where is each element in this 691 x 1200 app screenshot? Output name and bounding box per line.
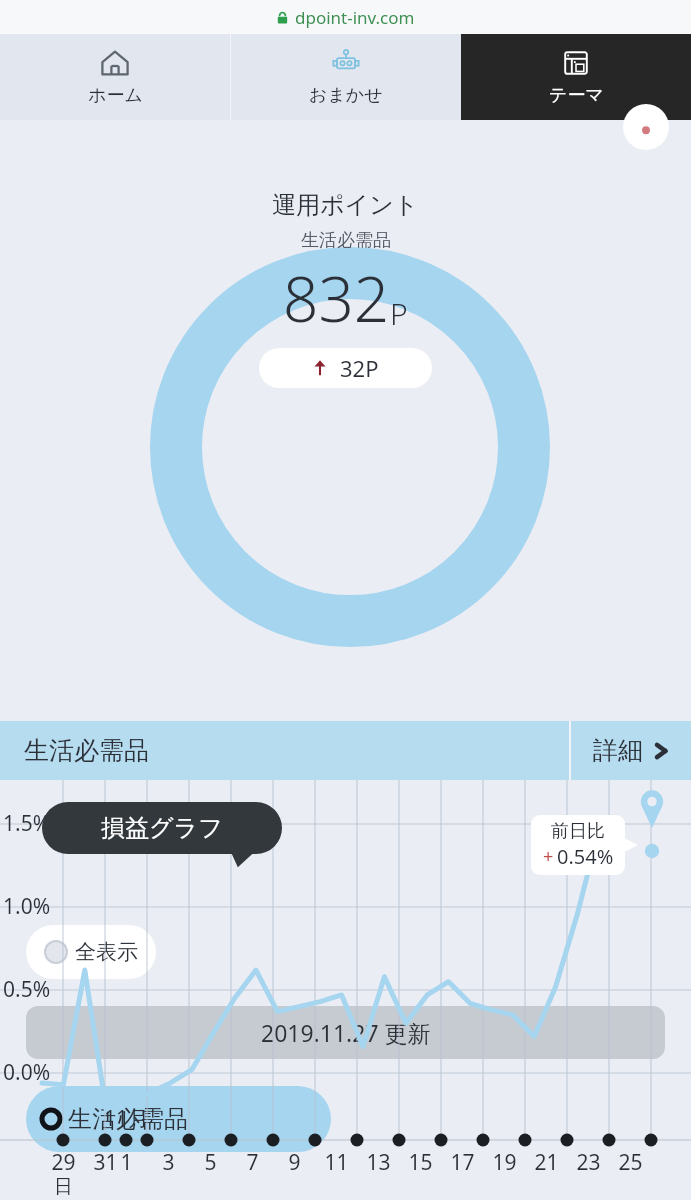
button[interactable]: 全表示: [44, 925, 138, 979]
button[interactable]: 損益グラフ: [42, 802, 282, 854]
staticText: 全表示: [75, 939, 138, 965]
staticText: 25: [618, 1148, 643, 1177]
staticText: 29: [51, 1148, 76, 1177]
button[interactable]: ホーム: [0, 34, 230, 120]
staticText: P: [390, 293, 408, 334]
staticText: 運用ポイント: [272, 190, 419, 220]
staticText: 0.0%: [3, 1058, 51, 1087]
staticText: 32P: [340, 353, 379, 383]
staticText: 前日比: [551, 820, 605, 843]
staticText: おまかせ: [309, 84, 383, 107]
staticText: ホーム: [88, 84, 143, 107]
staticText: 7: [246, 1148, 259, 1177]
staticText: 19: [492, 1148, 517, 1177]
staticText: 832: [283, 256, 390, 340]
button[interactable]: おまかせ: [231, 34, 461, 120]
staticText: 13: [366, 1148, 391, 1177]
staticText: dpoint-inv.com: [295, 6, 415, 29]
staticText: 0.54%: [557, 843, 614, 870]
staticText: 3: [162, 1148, 175, 1177]
button[interactable]: テーマ: [461, 34, 691, 120]
staticText: 1.0%: [3, 892, 51, 921]
button[interactable]: 生活必需品: [40, 1086, 331, 1152]
staticText: 21: [534, 1148, 559, 1177]
button[interactable]: 32P: [259, 348, 432, 388]
staticText: テーマ: [549, 84, 604, 107]
staticText: 5: [204, 1148, 217, 1177]
staticText: 11: [324, 1148, 349, 1177]
staticText: 日: [54, 1175, 73, 1199]
staticText: +: [543, 844, 554, 869]
staticText: 損益グラフ: [101, 813, 223, 843]
staticText: 2019.11.27 更新: [261, 1017, 431, 1048]
button[interactable]: 詳細: [593, 721, 669, 780]
staticText: 11月: [104, 1104, 150, 1133]
staticText: 15: [408, 1148, 433, 1177]
staticText: 9: [288, 1148, 301, 1177]
button[interactable]: 前日比: [531, 815, 625, 875]
staticText: 生活必需品: [24, 735, 149, 766]
staticText: 17: [450, 1148, 475, 1177]
button[interactable]: 通知: [623, 104, 669, 150]
staticText: 1: [120, 1148, 133, 1177]
button[interactable]: 2019.11.27 更新: [26, 1006, 665, 1059]
staticText: 23: [576, 1148, 601, 1177]
staticText: 1.5%: [3, 809, 51, 838]
staticText: 生活必需品: [301, 229, 391, 252]
staticText: 0.5%: [3, 975, 51, 1004]
staticText: 生活必需品: [68, 1104, 188, 1134]
staticText: 詳細: [593, 735, 643, 766]
staticText: 31: [93, 1148, 118, 1177]
